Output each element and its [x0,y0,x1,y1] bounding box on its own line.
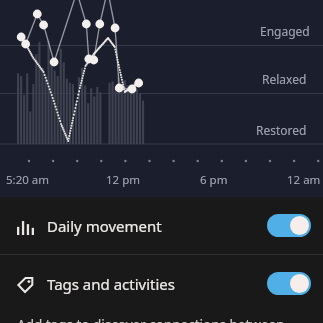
staticText: 6 pm [200,172,228,188]
staticText: Daily movement [47,216,162,236]
staticText: Tags and activities [47,274,175,294]
button[interactable]: Daily movement on [267,214,311,237]
button[interactable]: Tags and activities on [267,272,311,295]
button[interactable]: Daily movement [0,197,323,254]
button[interactable]: Tags and activities [0,255,323,312]
staticText: 12 pm [106,172,140,188]
staticText: Add tags to discover connections between [17,316,285,323]
staticText: Relaxed [262,71,307,87]
staticText: Engaged [260,23,310,39]
staticText: 5:20 am [6,172,50,188]
staticText: 12 am [287,172,321,188]
staticText: Restored [256,122,307,138]
